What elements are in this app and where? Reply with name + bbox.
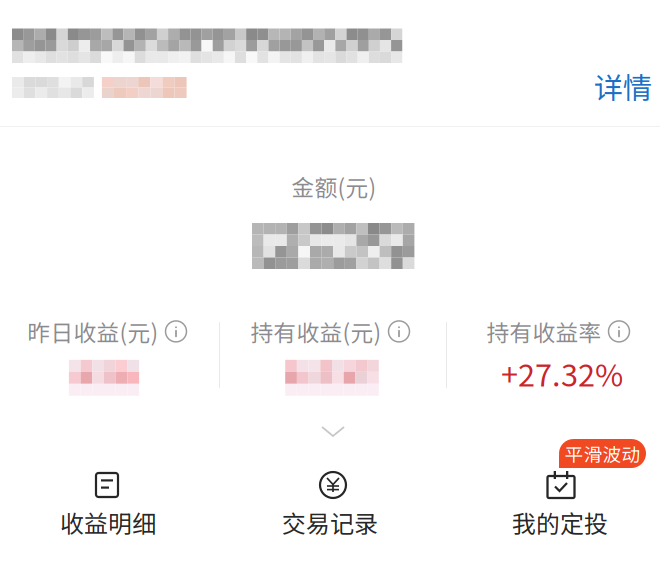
staticText: 金额(元) bbox=[291, 170, 376, 203]
staticText: 持有收益率 bbox=[486, 315, 601, 348]
button[interactable]: 详情 bbox=[588, 60, 658, 112]
button[interactable]: 交易记录 bbox=[220, 468, 440, 544]
staticText: 持有收益(元) bbox=[250, 315, 381, 348]
button[interactable]: 收益明细 bbox=[0, 468, 220, 544]
staticText: 收益明细 bbox=[60, 505, 156, 540]
staticText: 交易记录 bbox=[282, 505, 378, 540]
button[interactable]: 我的定投 bbox=[440, 468, 660, 544]
staticText: 昨日收益(元) bbox=[27, 315, 158, 348]
staticText: 平滑波动 bbox=[564, 440, 640, 467]
staticText: 我的定投 bbox=[512, 505, 608, 540]
staticText: 详情 bbox=[594, 65, 652, 107]
button[interactable]: 展开 bbox=[312, 417, 354, 446]
staticText: +27.32% bbox=[501, 351, 623, 395]
